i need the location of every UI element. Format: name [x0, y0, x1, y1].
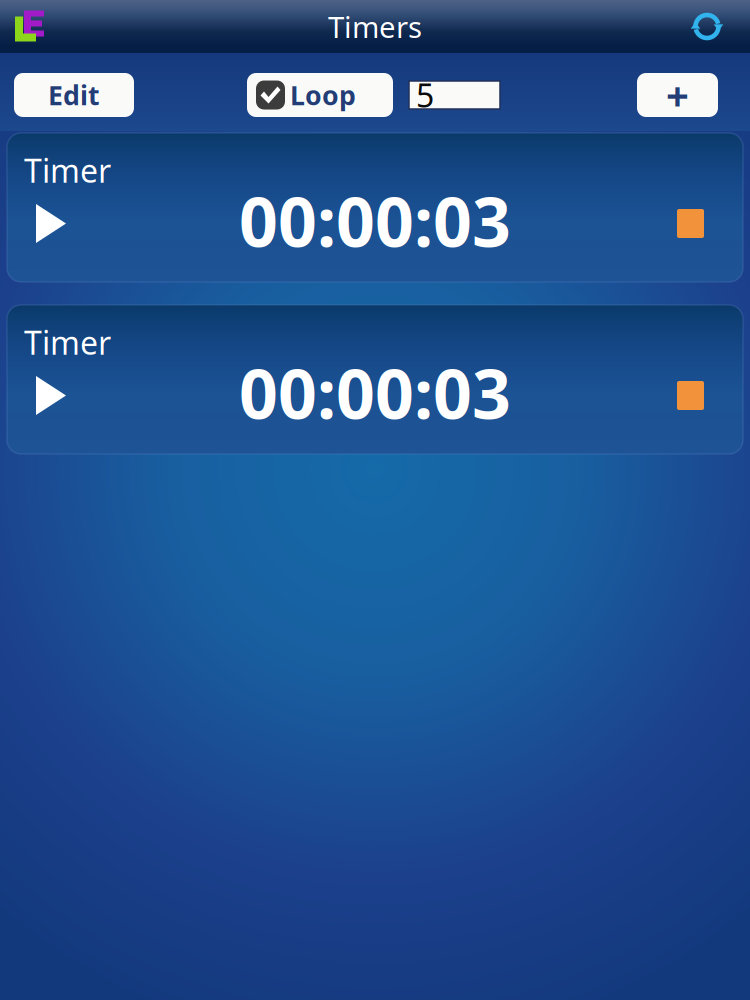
button[interactable]: Timer — [7, 133, 743, 282]
staticText: Timers — [328, 7, 422, 46]
staticText: Loop — [290, 77, 356, 113]
staticText: Timer — [24, 321, 111, 363]
button[interactable]: Timer — [7, 305, 743, 454]
button[interactable]: 5 — [409, 81, 500, 109]
staticText: + — [666, 68, 689, 121]
staticText: 5 — [416, 74, 434, 116]
staticText: Timer — [24, 149, 111, 191]
button[interactable]: Refresh — [690, 9, 750, 43]
button[interactable]: Edit — [14, 73, 134, 117]
button[interactable]: + — [637, 73, 718, 117]
staticText: 00:00:03 — [239, 175, 511, 266]
staticText: 00:00:03 — [239, 347, 511, 438]
button[interactable]: Loop — [247, 73, 393, 117]
staticText: Edit — [48, 77, 100, 113]
button[interactable]: App — [0, 5, 49, 47]
